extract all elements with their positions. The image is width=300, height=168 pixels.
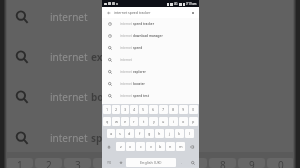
button[interactable]: English (UK)	[126, 158, 176, 167]
staticText: 5	[133, 158, 139, 168]
button[interactable]: 6	[149, 105, 158, 114]
button[interactable]: j	[165, 129, 174, 138]
button[interactable]: r	[130, 117, 138, 126]
button[interactable]: 0	[189, 105, 198, 114]
staticText: speed tracker	[133, 22, 155, 26]
button[interactable]: w	[112, 117, 120, 126]
staticText: booster	[133, 82, 145, 86]
button[interactable]: 2	[112, 105, 120, 114]
button[interactable]: n	[166, 142, 175, 151]
button[interactable]: 7	[159, 105, 168, 114]
staticText: 6	[152, 107, 155, 112]
button[interactable]: i	[169, 117, 178, 126]
button[interactable]: q	[103, 117, 111, 126]
staticText: e	[124, 119, 127, 124]
button[interactable]: ?!0	[103, 158, 115, 167]
button[interactable]: l	[185, 129, 194, 138]
staticText: 9	[249, 158, 255, 168]
button[interactable]: key	[116, 158, 125, 167]
staticText: f	[139, 131, 141, 136]
staticText: 4	[133, 107, 136, 112]
button[interactable]: v	[146, 142, 155, 151]
button[interactable]: 4	[130, 105, 138, 114]
staticText: i	[173, 119, 174, 124]
staticText: p	[192, 119, 195, 124]
button[interactable]: d	[125, 129, 134, 138]
button[interactable]: internet	[102, 54, 199, 66]
button[interactable]: k	[175, 129, 184, 138]
staticText: w	[115, 119, 118, 124]
button[interactable]: 3	[121, 105, 129, 114]
staticText: 2	[115, 107, 118, 112]
button[interactable]: 8	[169, 105, 178, 114]
button[interactable]: t	[139, 117, 148, 126]
staticText: 3	[124, 107, 127, 112]
staticText: internet	[50, 90, 91, 104]
staticText: ?!0	[107, 161, 112, 165]
button[interactable]: key	[187, 158, 198, 167]
staticText: 0	[278, 158, 284, 168]
button[interactable]: z	[116, 142, 125, 151]
button[interactable]: m	[176, 142, 185, 151]
staticText: 3	[75, 158, 81, 168]
staticText: speed test	[133, 94, 149, 98]
staticText: t	[143, 119, 145, 124]
button[interactable]: key	[103, 142, 115, 151]
staticText: exp	[91, 50, 109, 64]
staticText: internet	[120, 22, 133, 26]
button[interactable]: internet	[102, 18, 199, 30]
staticText: 8	[172, 107, 175, 112]
staticText: d	[128, 131, 131, 136]
button[interactable]: y	[149, 117, 158, 126]
button[interactable]: s	[116, 129, 124, 138]
button[interactable]: g	[145, 129, 154, 138]
staticText: n	[169, 144, 172, 149]
button[interactable]: x	[126, 142, 135, 151]
staticText: 1	[17, 158, 23, 168]
staticText: s	[119, 131, 121, 136]
button[interactable]: h	[155, 129, 164, 138]
staticText: m	[179, 144, 183, 149]
staticText: 5	[142, 107, 145, 112]
staticText: internet speed tracker	[114, 10, 151, 15]
staticText: speed	[133, 46, 143, 50]
staticText: internet	[120, 94, 133, 98]
button[interactable]: internet	[102, 66, 199, 78]
button[interactable]: o	[179, 117, 188, 126]
staticText: j	[169, 131, 170, 136]
button[interactable]: key	[186, 142, 198, 151]
staticText: u	[162, 119, 165, 124]
button[interactable]: internet	[102, 78, 199, 90]
button[interactable]: Back	[102, 7, 199, 18]
staticText: k	[178, 131, 181, 136]
button[interactable]: e	[121, 117, 129, 126]
button[interactable]: b	[156, 142, 165, 151]
button[interactable]: internet	[102, 42, 199, 54]
staticText: h	[158, 131, 161, 136]
button[interactable]: p	[189, 117, 198, 126]
staticText: 1	[106, 107, 109, 112]
staticText: 4G	[174, 2, 178, 6]
button[interactable]: 9	[179, 105, 188, 114]
staticText: y	[153, 119, 155, 124]
button[interactable]: u	[159, 117, 168, 126]
button[interactable]: 1	[103, 105, 111, 114]
button[interactable]: internet	[102, 30, 199, 42]
staticText: x	[129, 144, 132, 149]
button[interactable]: 5	[139, 105, 148, 114]
button[interactable]: a	[107, 129, 115, 138]
staticText: boo	[91, 90, 110, 104]
staticText: internet	[120, 70, 133, 74]
staticText: 0	[192, 107, 195, 112]
staticText: 7	[191, 158, 197, 168]
staticText: 4	[104, 158, 110, 168]
staticText: internet	[120, 58, 132, 62]
button[interactable]: f	[135, 129, 144, 138]
button[interactable]: c	[136, 142, 145, 151]
staticText: 6	[162, 158, 168, 168]
button[interactable]: internet	[102, 90, 199, 102]
staticText: l	[189, 131, 190, 136]
staticText: r	[133, 119, 135, 124]
staticText: download manager	[133, 34, 163, 38]
